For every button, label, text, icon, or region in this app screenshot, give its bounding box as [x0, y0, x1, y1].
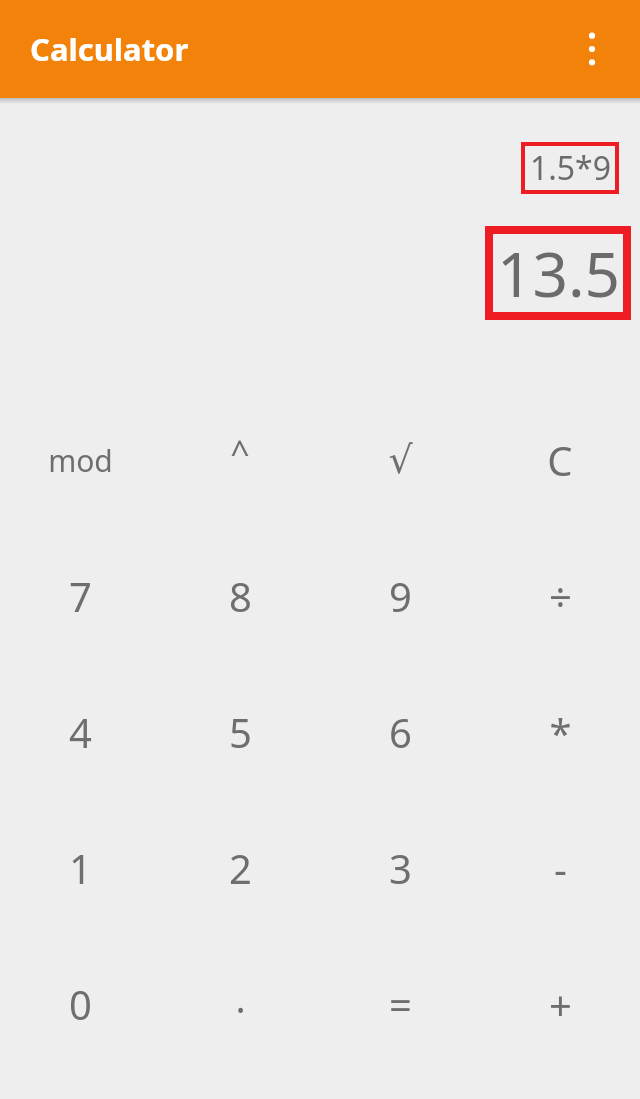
button[interactable]: 3: [320, 800, 480, 936]
button[interactable]: √: [320, 392, 480, 528]
button[interactable]: *: [480, 664, 640, 800]
staticText: 6: [389, 705, 412, 759]
staticText: 13.5: [496, 231, 620, 315]
staticText: mod: [48, 440, 113, 481]
staticText: 3: [389, 841, 412, 895]
button[interactable]: 5: [160, 664, 320, 800]
button[interactable]: mod: [0, 392, 160, 528]
staticText: ÷: [549, 569, 572, 623]
staticText: *: [549, 705, 572, 759]
staticText: ^: [230, 429, 250, 475]
button[interactable]: C: [480, 392, 640, 528]
button[interactable]: 1.5*9: [525, 146, 615, 190]
staticText: 8: [229, 569, 252, 623]
staticText: √: [388, 438, 413, 482]
staticText: 1.5*9: [529, 146, 611, 190]
button[interactable]: More options: [560, 17, 624, 81]
button[interactable]: -: [480, 800, 640, 936]
button[interactable]: 0: [0, 936, 160, 1072]
staticText: 0: [69, 977, 92, 1031]
button[interactable]: 4: [0, 664, 160, 800]
staticText: C: [547, 433, 573, 487]
button[interactable]: .: [160, 936, 320, 1072]
staticText: -: [554, 841, 567, 895]
button[interactable]: ^: [160, 392, 320, 528]
button[interactable]: 1: [0, 800, 160, 936]
button[interactable]: +: [480, 936, 640, 1072]
staticText: 5: [229, 705, 252, 759]
staticText: 1: [69, 841, 92, 895]
button[interactable]: 6: [320, 664, 480, 800]
staticText: .: [235, 972, 246, 1024]
button[interactable]: =: [320, 936, 480, 1072]
button[interactable]: 2: [160, 800, 320, 936]
button[interactable]: 7: [0, 528, 160, 664]
button[interactable]: 8: [160, 528, 320, 664]
staticText: 9: [389, 569, 412, 623]
button[interactable]: 13.5: [490, 231, 626, 315]
staticText: =: [389, 977, 412, 1031]
staticText: Calculator: [30, 28, 189, 70]
staticText: 4: [69, 705, 92, 759]
button[interactable]: 9: [320, 528, 480, 664]
button[interactable]: ÷: [480, 528, 640, 664]
staticText: +: [549, 977, 572, 1031]
staticText: 7: [69, 569, 92, 623]
staticText: 2: [229, 841, 252, 895]
